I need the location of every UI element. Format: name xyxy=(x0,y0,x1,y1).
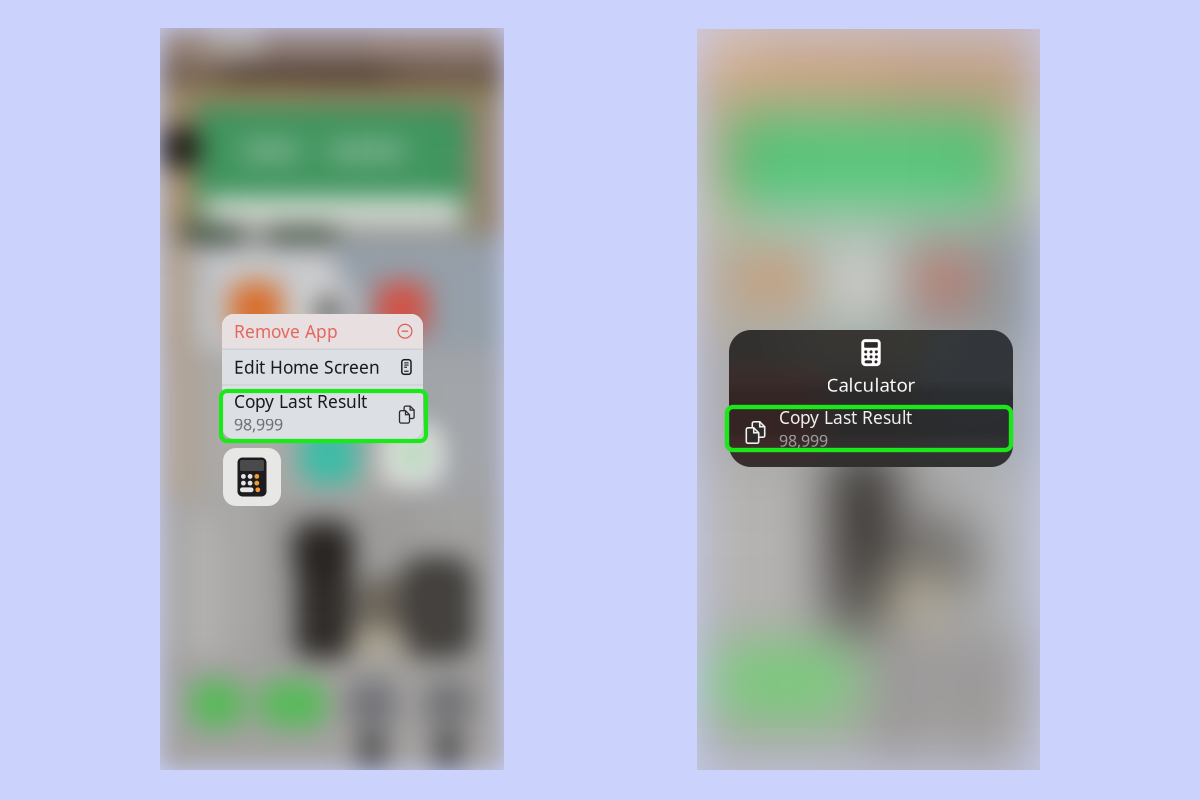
button[interactable]: Copy Last Result xyxy=(729,406,1013,451)
button[interactable]: Edit Home Screen xyxy=(222,349,423,384)
button[interactable]: Copy Last Result xyxy=(222,385,423,439)
staticText: 98,999 xyxy=(234,414,283,435)
staticText: Remove App xyxy=(234,320,338,343)
staticText: Copy Last Result xyxy=(234,390,367,413)
staticText: Calculator xyxy=(826,372,915,397)
staticText: Edit Home Screen xyxy=(234,355,380,378)
staticText: 98,999 xyxy=(779,430,828,451)
staticText: Copy Last Result xyxy=(779,406,912,429)
button[interactable]: Remove App xyxy=(222,314,423,349)
